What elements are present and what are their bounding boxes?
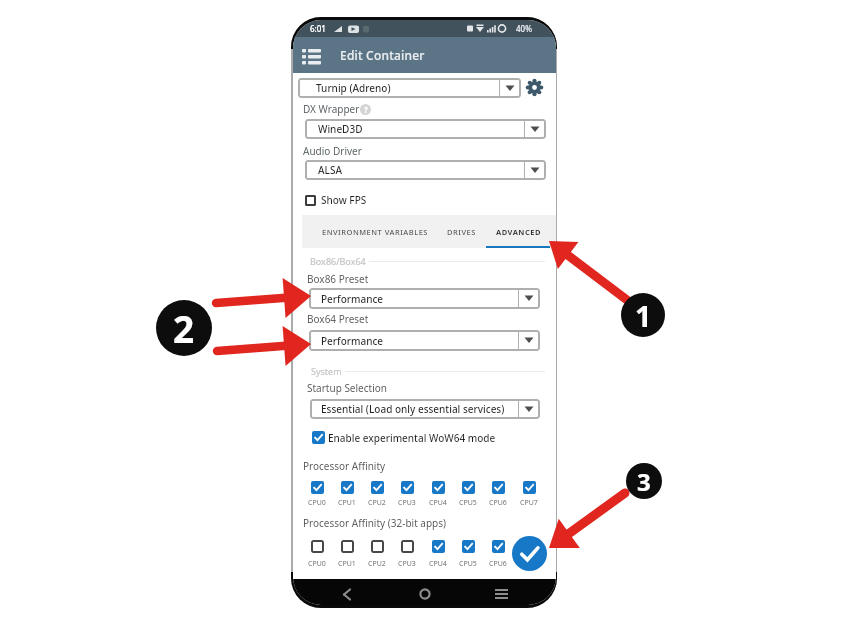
staticText: DX Wrapper [303, 102, 360, 116]
button[interactable] [341, 481, 354, 494]
staticText: CPU3 [398, 498, 416, 508]
button[interactable] [371, 481, 384, 494]
staticText: CPU4 [429, 498, 447, 508]
staticText: Edit Container [340, 47, 425, 63]
staticText: Performance [321, 334, 384, 348]
staticText: System [311, 365, 342, 377]
button[interactable]: Essential (Load only essential services) [310, 399, 540, 419]
staticText: Performance [321, 292, 384, 306]
staticText: Turnip (Adreno) [316, 81, 391, 95]
staticText: CPU7 [520, 559, 538, 569]
button[interactable]: DRIVES [440, 215, 482, 248]
staticText: Processor Affinity [303, 459, 386, 473]
staticText: 2 [173, 303, 195, 353]
staticText: 40% [516, 23, 532, 34]
button[interactable]: Turnip (Adreno) [298, 78, 521, 98]
staticText: WineD3D [318, 122, 363, 136]
staticText: 3 [637, 465, 651, 498]
staticText: Box64 Preset [307, 312, 369, 326]
staticText: Startup Selection [307, 381, 387, 395]
button[interactable] [526, 79, 543, 96]
staticText: ? [364, 104, 368, 115]
staticText: ADVANCED [496, 227, 541, 237]
button[interactable] [341, 540, 354, 553]
button[interactable] [305, 195, 316, 206]
button[interactable] [401, 481, 414, 494]
staticText: CPU5 [459, 498, 477, 508]
staticText: CPU2 [368, 498, 386, 508]
button[interactable] [311, 540, 324, 553]
staticText: Enable experimental WoW64 mode [328, 431, 496, 445]
button[interactable] [432, 481, 445, 494]
staticText: CPU0 [308, 498, 326, 508]
staticText: 6:01 [310, 23, 326, 34]
button[interactable]: WineD3D [305, 119, 546, 139]
button[interactable] [523, 481, 536, 494]
staticText: CPU1 [338, 559, 356, 569]
button[interactable]: Performance [309, 288, 540, 309]
button[interactable] [523, 540, 536, 553]
button[interactable]: ADVANCED [487, 215, 549, 248]
staticText: ALSA [318, 163, 342, 177]
button[interactable]: ENVIRONMENT VARIABLES [310, 215, 440, 248]
button[interactable]: Performance [309, 330, 540, 351]
button[interactable] [302, 48, 321, 63]
staticText: CPU1 [338, 498, 356, 508]
staticText: DRIVES [447, 227, 476, 237]
button[interactable] [495, 589, 508, 599]
staticText: Processor Affinity (32-bit apps) [303, 516, 447, 530]
staticText: CPU0 [308, 559, 326, 569]
button[interactable] [492, 540, 505, 553]
staticText: Essential (Load only essential services) [321, 402, 505, 416]
button[interactable] [371, 540, 384, 553]
button[interactable] [419, 588, 431, 600]
staticText: CPU6 [489, 498, 507, 508]
staticText: Box86 Preset [307, 272, 369, 286]
button[interactable] [462, 481, 475, 494]
staticText: CPU3 [398, 559, 416, 569]
staticText: 1 [635, 296, 652, 335]
staticText: CPU6 [489, 559, 507, 569]
staticText: Audio Driver [303, 144, 362, 158]
staticText: Show FPS [321, 193, 367, 207]
button[interactable] [342, 589, 352, 600]
staticText: Box86/Box64 [310, 255, 366, 267]
staticText: CPU2 [368, 559, 386, 569]
staticText: CPU7 [520, 498, 538, 508]
button[interactable] [512, 536, 547, 571]
button[interactable] [462, 540, 475, 553]
button[interactable] [492, 481, 505, 494]
staticText: CPU5 [459, 559, 477, 569]
button[interactable] [432, 540, 445, 553]
button[interactable] [311, 481, 324, 494]
button[interactable]: ALSA [305, 160, 546, 180]
button[interactable] [401, 540, 414, 553]
staticText: ENVIRONMENT VARIABLES [322, 227, 428, 237]
button[interactable] [312, 431, 325, 444]
staticText: CPU4 [429, 559, 447, 569]
